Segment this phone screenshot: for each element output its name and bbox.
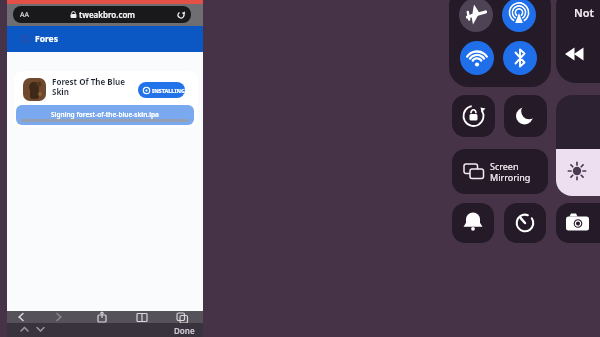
button[interactable] (460, 41, 494, 75)
button[interactable] (7, 311, 203, 323)
button[interactable]: Not (556, 0, 600, 83)
staticText: Fores (35, 33, 58, 45)
staticText: Not (574, 5, 594, 20)
staticText: Done (174, 325, 195, 336)
button[interactable] (504, 203, 546, 243)
button[interactable] (503, 41, 537, 75)
button[interactable] (556, 95, 600, 196)
button[interactable]: AA (13, 6, 191, 23)
staticText: Forest Of The Blue Skin (52, 76, 126, 98)
button[interactable] (502, 0, 536, 32)
button[interactable] (452, 203, 494, 243)
button[interactable]: INSTALLING (138, 82, 185, 98)
staticText: Screen Mirroring (490, 160, 531, 184)
staticText: Signing forest-of-the-blue-skin.ipa (51, 110, 159, 119)
button[interactable] (504, 95, 547, 137)
staticText: INSTALLING (152, 87, 185, 94)
button[interactable]: Done (7, 323, 203, 337)
button[interactable] (556, 203, 600, 243)
staticText: tweakbro.com (79, 9, 136, 20)
button[interactable] (459, 0, 493, 32)
button[interactable]: Screen Mirroring (452, 149, 548, 194)
staticText: AA (20, 10, 29, 20)
button[interactable] (452, 95, 495, 137)
